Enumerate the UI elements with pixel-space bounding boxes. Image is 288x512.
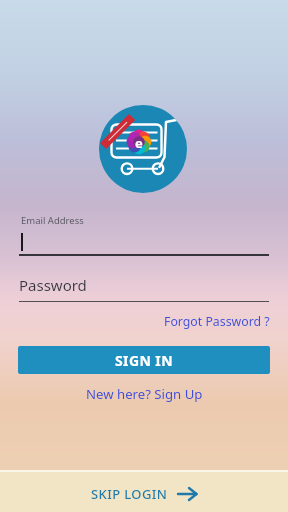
button[interactable]: SIGN IN bbox=[18, 346, 270, 374]
button[interactable]: Forgot Password ? bbox=[0, 313, 270, 330]
button[interactable]: New here? Sign Up bbox=[86, 385, 203, 403]
staticText: SKIP LOGIN bbox=[91, 485, 168, 503]
staticText: Password bbox=[19, 275, 87, 295]
staticText: Email Address bbox=[21, 214, 84, 227]
button[interactable]: SKIP LOGIN bbox=[91, 485, 198, 503]
staticText: Forgot Password ? bbox=[164, 313, 270, 330]
staticText: e bbox=[135, 134, 143, 150]
staticText: SIGN IN bbox=[115, 351, 173, 370]
